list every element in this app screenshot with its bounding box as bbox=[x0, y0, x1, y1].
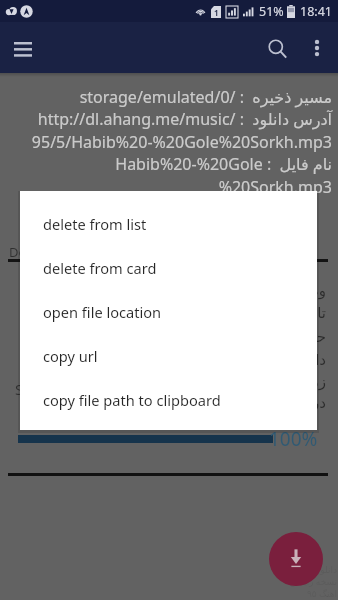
staticText: 100% bbox=[269, 426, 318, 452]
button[interactable]: delete from card bbox=[20, 246, 317, 290]
staticText: وضعیت bbox=[0, 282, 326, 299]
staticText: %20Sorkh.mp3 bbox=[0, 176, 332, 198]
staticText: تاریخ bbox=[0, 304, 326, 321]
staticText: storage/emulated/0/ : مسیر ذخیره bbox=[0, 86, 332, 108]
staticText: delete from list bbox=[43, 214, 147, 234]
staticText: زمان باقیمانده bbox=[0, 371, 326, 391]
staticText: Habib%20-%20Gole : نام فایل bbox=[0, 153, 332, 175]
staticText: 95/5/Habib%20-%20Gole%20Sorkh.mp3 bbox=[0, 131, 332, 153]
button[interactable]: copy url bbox=[20, 334, 317, 378]
button[interactable]: copy file path to clipboard bbox=[20, 378, 317, 422]
staticText: copy file path to clipboard bbox=[43, 390, 221, 410]
staticText: open file location bbox=[43, 302, 162, 322]
staticText: delete from card bbox=[43, 258, 157, 278]
button[interactable]: Search bbox=[258, 29, 296, 67]
button[interactable]: Open navigation menu bbox=[4, 30, 41, 67]
staticText: 18:41 bbox=[300, 3, 332, 20]
staticText: حجم فایل bbox=[0, 326, 326, 346]
button[interactable]: delete from list bbox=[20, 202, 317, 246]
staticText: copy url bbox=[43, 346, 98, 366]
staticText: http://dl.ahang.me/music/ : آدرس دانلود bbox=[0, 108, 332, 130]
staticText: درصد bbox=[0, 394, 326, 411]
staticText: 1 bbox=[214, 7, 219, 18]
button[interactable]: open file location bbox=[20, 290, 317, 334]
staticText: 51% bbox=[259, 3, 284, 20]
button[interactable]: More options bbox=[299, 30, 335, 66]
staticText: Download bbox=[9, 243, 71, 261]
button[interactable]: Download bbox=[269, 532, 323, 586]
staticText: دانلود شده bbox=[0, 349, 326, 369]
staticText: Speed : 0 B/s bbox=[15, 379, 106, 399]
staticText: نسخه رایگان bbox=[289, 575, 337, 587]
staticText: دانلود منیجر bbox=[292, 563, 337, 575]
